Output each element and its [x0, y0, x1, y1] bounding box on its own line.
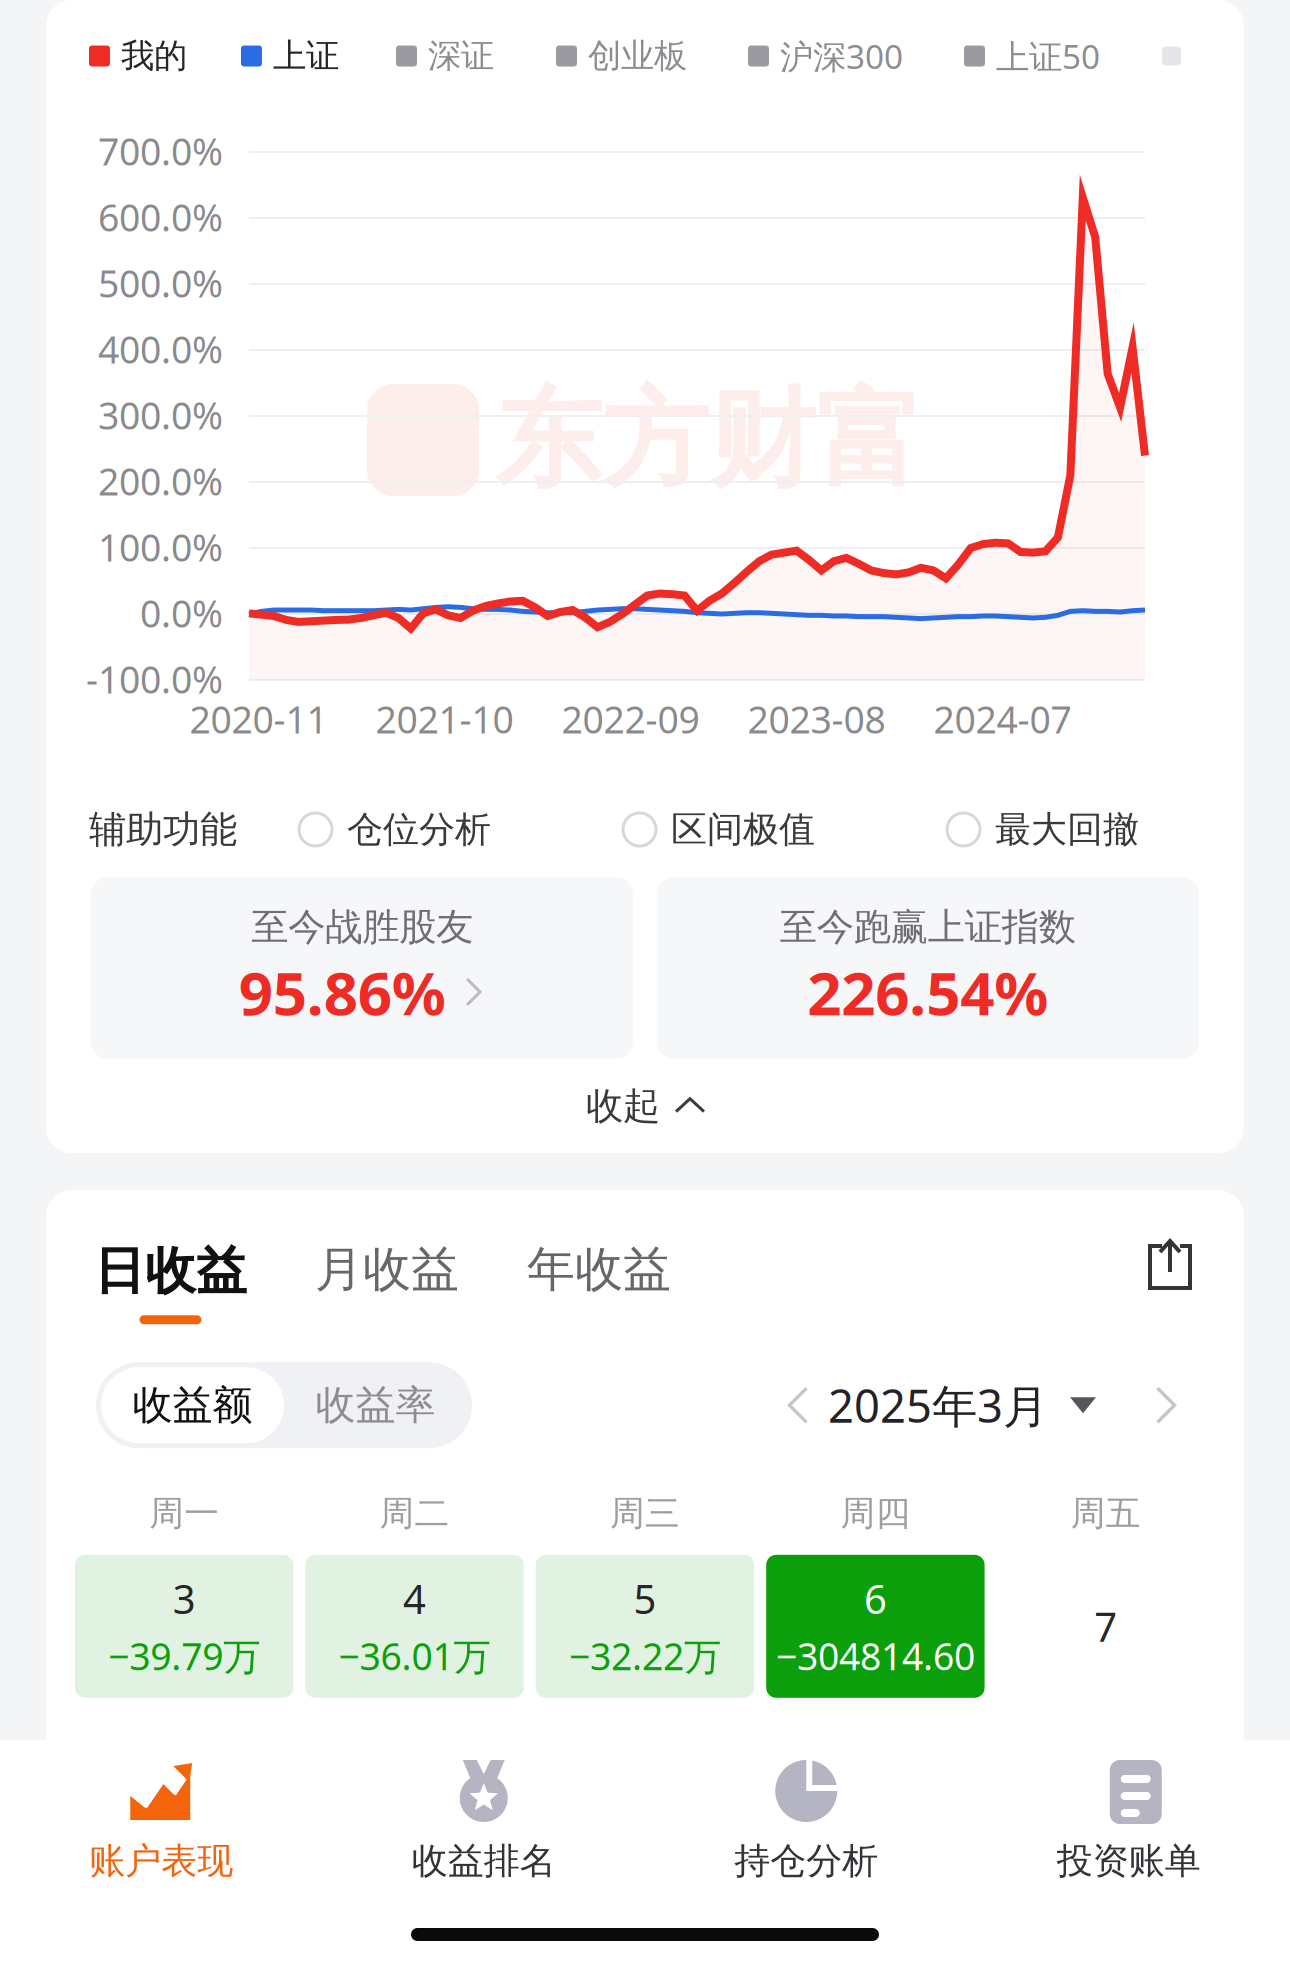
button[interactable]: 4	[305, 1555, 524, 1698]
button[interactable]: 至今跑赢上证指数	[656, 877, 1199, 1059]
button[interactable]: 仓位分析	[299, 807, 491, 852]
staticText: 95.86%	[239, 952, 446, 1032]
staticText: 100.0%	[98, 522, 223, 572]
button[interactable]: 月收益	[315, 1240, 459, 1299]
staticText: 最大回撤	[995, 807, 1139, 852]
staticText: 持仓分析	[734, 1839, 878, 1883]
staticText: 收益排名	[412, 1839, 556, 1883]
button[interactable]: 收益额	[101, 1367, 284, 1443]
staticText: 区间极值	[671, 807, 815, 852]
button[interactable]: 日收益	[94, 1240, 247, 1324]
staticText: 仓位分析	[347, 807, 491, 852]
staticText: 投资账单	[1057, 1839, 1201, 1883]
staticText: 700.0%	[98, 126, 223, 176]
staticText: 周四	[840, 1492, 910, 1535]
button[interactable]: 5	[536, 1555, 754, 1698]
staticText: 300.0%	[98, 390, 223, 440]
staticText: 深证	[428, 35, 494, 76]
button[interactable]: 账户表现	[0, 1758, 322, 1883]
staticText: 月收益	[315, 1240, 459, 1299]
staticText: −36.01万	[339, 1631, 491, 1681]
staticText: 收益率	[315, 1381, 435, 1430]
staticText: 上证	[273, 35, 339, 76]
staticText: 东方财富	[495, 374, 923, 505]
staticText: 日收益	[94, 1240, 247, 1302]
staticText: 上证50	[996, 34, 1100, 78]
button[interactable]: 最大回撤	[947, 807, 1139, 852]
staticText: 沪深300	[780, 34, 903, 78]
button[interactable]: 收起	[46, 1059, 1244, 1153]
staticText: 2025年3月	[828, 1375, 1048, 1435]
staticText: 我的	[121, 35, 187, 76]
staticText: 辅助功能	[89, 807, 237, 852]
staticText: −39.79万	[108, 1631, 260, 1681]
button[interactable]: 3	[75, 1555, 293, 1698]
staticText: 7	[1094, 1600, 1117, 1653]
staticText: 2023-08	[747, 694, 885, 744]
staticText: 周一	[149, 1492, 219, 1535]
staticText: 收益额	[132, 1381, 252, 1430]
staticText: 收起	[586, 1083, 660, 1129]
staticText: -100.0%	[86, 654, 223, 704]
staticText: 周五	[1071, 1492, 1141, 1535]
button[interactable]: 收益率	[284, 1367, 467, 1443]
button[interactable]: 至今战胜股友	[91, 877, 633, 1059]
staticText: 0.0%	[140, 588, 223, 638]
staticText: 600.0%	[98, 192, 223, 242]
button[interactable]: 6	[766, 1555, 985, 1698]
staticText: 200.0%	[98, 456, 223, 506]
button[interactable]: 分享	[1146, 1240, 1196, 1294]
staticText: 周二	[380, 1492, 450, 1535]
staticText: 至今战胜股友	[251, 904, 473, 950]
button[interactable]: 区间极值	[623, 807, 815, 852]
staticText: 2021-10	[375, 694, 513, 744]
staticText: 5	[633, 1572, 656, 1625]
staticText: 6	[864, 1572, 887, 1625]
staticText: 3	[173, 1572, 196, 1625]
button[interactable]: 投资账单	[967, 1758, 1290, 1883]
staticText: −304814.60	[776, 1631, 975, 1681]
staticText: 2020-11	[189, 694, 327, 744]
staticText: 年收益	[527, 1240, 671, 1299]
button[interactable]: 7	[997, 1555, 1215, 1698]
button[interactable]: 上一月	[770, 1376, 828, 1434]
button[interactable]: 下一月	[1136, 1376, 1194, 1434]
staticText: 2024-07	[933, 694, 1071, 744]
staticText: 账户表现	[89, 1839, 233, 1883]
button[interactable]: 收益排名	[322, 1758, 645, 1883]
staticText: −32.22万	[569, 1631, 721, 1681]
button[interactable]: 持仓分析	[645, 1758, 967, 1883]
button[interactable]: 年收益	[527, 1240, 671, 1299]
staticText: 周三	[610, 1492, 680, 1535]
staticText: 2022-09	[561, 694, 699, 744]
staticText: 226.54%	[807, 952, 1048, 1032]
staticText: 400.0%	[98, 324, 223, 374]
staticText: 500.0%	[98, 258, 223, 308]
staticText: 4	[403, 1572, 426, 1625]
staticText: 至今跑赢上证指数	[780, 904, 1076, 950]
staticText: 创业板	[588, 35, 687, 76]
